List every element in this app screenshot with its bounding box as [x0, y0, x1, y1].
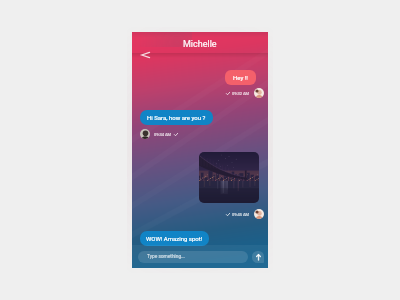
button[interactable]: Hi Sara, how are you ? — [140, 110, 213, 125]
staticText: Hi Sara, how are you ? — [147, 114, 206, 121]
staticText: 09:45 AM — [232, 212, 250, 217]
button[interactable]: WOW! Amazing spot! — [140, 231, 209, 246]
staticText: 09:34 AM — [154, 132, 172, 137]
button[interactable]: Send — [252, 251, 264, 263]
staticText: WOW! Amazing spot! — [146, 235, 203, 242]
staticText: 09:32 AM — [232, 91, 250, 96]
staticText: Hey !! — [233, 74, 248, 81]
button[interactable]: Hey !! — [225, 70, 256, 85]
button[interactable]: Photo — [199, 152, 259, 203]
button[interactable]: Michelle — [132, 32, 268, 53]
button[interactable]: Back — [136, 46, 154, 64]
staticText: Michelle — [183, 39, 217, 50]
button[interactable]: Type something... — [138, 251, 248, 263]
staticText: Type something... — [147, 254, 185, 260]
